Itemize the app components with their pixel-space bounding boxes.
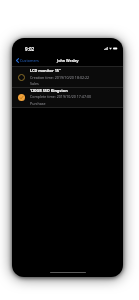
staticText: 120GB SSD Kingston bbox=[30, 88, 68, 93]
button[interactable]: 120GB SSD Kingston bbox=[12, 88, 123, 107]
button[interactable]: Customers bbox=[16, 58, 39, 63]
staticText: LCD monitor 15" bbox=[30, 68, 61, 73]
staticText: John Wesley bbox=[57, 58, 79, 63]
staticText: Creation time: 2019/10/20 18:02:22 bbox=[30, 75, 90, 80]
button[interactable]: LCD monitor 15" bbox=[12, 67, 123, 87]
staticText: Customers bbox=[20, 58, 39, 63]
staticText: Purchase bbox=[30, 101, 46, 106]
staticText: Sales bbox=[30, 81, 39, 86]
staticText: 9:02 bbox=[25, 46, 35, 52]
staticText: Complete time: 2019/10/20 17:47:00 bbox=[30, 94, 92, 99]
